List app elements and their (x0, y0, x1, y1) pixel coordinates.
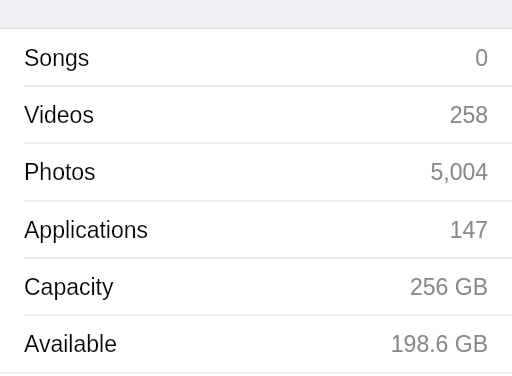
staticText: Applications (24, 217, 149, 243)
staticText: 258 (449, 102, 488, 128)
button[interactable]: Applications (0, 202, 512, 258)
button[interactable]: Songs (0, 30, 512, 86)
staticText: 198.6 GB (390, 331, 488, 357)
staticText: Available (24, 331, 117, 357)
button[interactable]: Photos (0, 144, 512, 200)
staticText: Songs (24, 45, 90, 71)
staticText: 147 (449, 217, 488, 243)
staticText: Photos (24, 159, 96, 185)
button[interactable]: Available (0, 316, 512, 372)
staticText: 256 GB (410, 274, 488, 300)
staticText: 5,004 (430, 159, 488, 185)
staticText: Capacity (24, 274, 114, 300)
staticText: Videos (24, 102, 94, 128)
button[interactable]: Videos (0, 87, 512, 143)
staticText: 0 (475, 45, 488, 71)
button[interactable]: Capacity (0, 259, 512, 315)
